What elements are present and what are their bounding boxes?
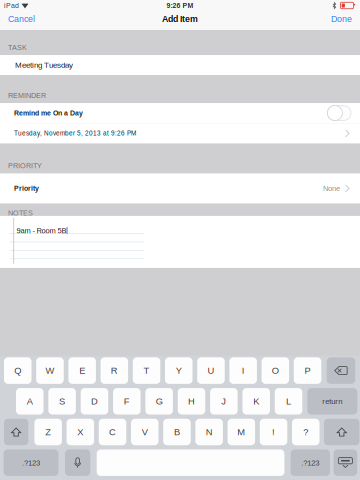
button[interactable]: U bbox=[197, 357, 225, 384]
button[interactable]: Delete bbox=[327, 357, 355, 384]
staticText: L bbox=[286, 396, 291, 406]
button[interactable]: L bbox=[275, 388, 302, 415]
button[interactable]: K bbox=[242, 388, 270, 415]
staticText: K bbox=[253, 396, 259, 406]
staticText: PRIORITY bbox=[8, 162, 42, 170]
button[interactable]: Y bbox=[165, 357, 192, 384]
button[interactable]: Done bbox=[323, 10, 360, 27]
button[interactable]: M bbox=[228, 419, 255, 445]
staticText: W bbox=[45, 365, 54, 376]
button[interactable]: O bbox=[262, 357, 289, 384]
button[interactable]: B bbox=[163, 419, 191, 445]
button[interactable]: P bbox=[294, 357, 321, 384]
button[interactable]: ? bbox=[292, 419, 319, 445]
button[interactable]: Shift bbox=[4, 419, 28, 445]
staticText: G bbox=[156, 396, 163, 406]
staticText: REMINDER bbox=[8, 91, 46, 99]
button[interactable]: F bbox=[113, 388, 141, 415]
button[interactable]: Q bbox=[4, 357, 31, 384]
button[interactable]: Tuesday, November 5, 2013 at 9:26 PM bbox=[0, 123, 360, 143]
staticText: D bbox=[91, 396, 98, 406]
staticText: B bbox=[174, 427, 180, 437]
staticText: X bbox=[77, 427, 83, 437]
button[interactable]: I bbox=[229, 357, 257, 384]
staticText: Priority bbox=[14, 184, 39, 192]
button[interactable]: Cancel bbox=[0, 10, 43, 27]
button[interactable]: H bbox=[178, 388, 205, 415]
staticText: None bbox=[323, 184, 340, 192]
staticText: 9am - Room 5B bbox=[16, 226, 66, 235]
staticText: N bbox=[206, 427, 213, 437]
button[interactable]: D bbox=[81, 388, 108, 415]
staticText: Cancel bbox=[8, 14, 35, 24]
staticText: NOTES bbox=[8, 209, 33, 217]
staticText: U bbox=[207, 365, 214, 376]
staticText: Y bbox=[176, 365, 182, 376]
button[interactable]: E bbox=[68, 357, 96, 384]
staticText: P bbox=[304, 365, 310, 376]
button[interactable]: ! bbox=[260, 419, 287, 445]
button[interactable]: S bbox=[48, 388, 76, 415]
staticText: S bbox=[59, 396, 65, 406]
staticText: H bbox=[188, 396, 195, 406]
staticText: C bbox=[109, 427, 116, 437]
staticText: ! bbox=[272, 427, 275, 437]
button[interactable]: R bbox=[101, 357, 128, 384]
staticText: A bbox=[27, 396, 33, 406]
button[interactable]: Shift bbox=[324, 419, 359, 445]
button[interactable]: J bbox=[210, 388, 238, 415]
button[interactable]: V bbox=[131, 419, 158, 445]
staticText: E bbox=[79, 365, 85, 376]
staticText: .?123 bbox=[301, 458, 319, 467]
button[interactable]: X bbox=[67, 419, 94, 445]
button[interactable]: T bbox=[133, 357, 160, 384]
button[interactable]: .?123 bbox=[4, 449, 58, 476]
staticText: T bbox=[144, 365, 150, 376]
button[interactable]: return bbox=[307, 388, 357, 415]
button[interactable]: Hide keyboard bbox=[334, 449, 357, 476]
button[interactable]: A bbox=[16, 388, 43, 415]
button[interactable]: Remind me on a day bbox=[327, 105, 351, 120]
button[interactable]: Z bbox=[34, 419, 62, 445]
button[interactable]: Priority bbox=[0, 173, 360, 203]
staticText: 9:26 PM bbox=[166, 2, 193, 9]
staticText: Add Item bbox=[162, 14, 198, 24]
button[interactable]: G bbox=[145, 388, 173, 415]
staticText: I bbox=[242, 365, 245, 376]
button[interactable]: Dictation bbox=[65, 449, 90, 476]
staticText: Meeting Tuesday bbox=[15, 60, 73, 69]
staticText: O bbox=[272, 365, 279, 376]
staticText: Tuesday, November 5, 2013 at 9:26 PM bbox=[14, 130, 136, 137]
staticText: .?123 bbox=[22, 458, 40, 467]
staticText: Z bbox=[45, 427, 51, 437]
button[interactable]: C bbox=[99, 419, 126, 445]
staticText: M bbox=[237, 427, 245, 437]
staticText: R bbox=[111, 365, 118, 376]
staticText: Remind me On a Day bbox=[14, 109, 83, 117]
staticText: F bbox=[124, 396, 130, 406]
staticText: iPad bbox=[4, 2, 19, 9]
staticText: V bbox=[142, 427, 148, 437]
staticText: Done bbox=[331, 14, 352, 24]
staticText: ? bbox=[303, 427, 308, 437]
button[interactable]: N bbox=[195, 419, 223, 445]
staticText: Q bbox=[14, 365, 21, 376]
staticText: TASK bbox=[8, 43, 27, 51]
button[interactable]: W bbox=[36, 357, 64, 384]
staticText: return bbox=[322, 397, 342, 406]
staticText: J bbox=[221, 396, 226, 406]
button[interactable]: .?123 bbox=[291, 449, 330, 476]
